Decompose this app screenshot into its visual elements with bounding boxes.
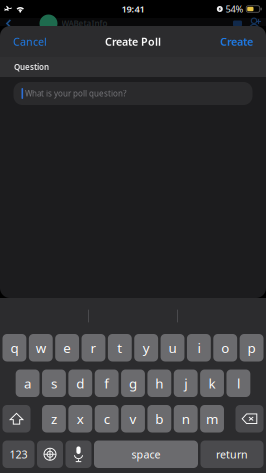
- staticText: 19:41: [121, 3, 144, 15]
- button[interactable]: c: [95, 405, 119, 432]
- staticText: Create: [220, 34, 253, 49]
- staticText: 54%: [225, 3, 243, 15]
- staticText: Create Poll: [105, 34, 161, 49]
- staticText: s: [51, 374, 57, 392]
- staticText: space: [131, 447, 160, 461]
- staticText: z: [51, 410, 57, 428]
- button[interactable]: k: [200, 369, 224, 397]
- staticText: b: [155, 410, 163, 428]
- button[interactable]: Delete: [235, 405, 263, 432]
- staticText: Cancel: [13, 34, 47, 49]
- staticText: l: [237, 374, 240, 392]
- button[interactable]: space: [94, 440, 198, 468]
- button[interactable]: Next keyboard: [37, 440, 63, 468]
- staticText: p: [248, 339, 256, 357]
- button[interactable]: x: [68, 405, 92, 432]
- staticText: n: [182, 410, 190, 428]
- button[interactable]: j: [174, 369, 198, 397]
- button[interactable]: t: [108, 334, 132, 361]
- button[interactable]: Shift: [2, 405, 30, 432]
- staticText: h: [155, 374, 163, 392]
- button[interactable]: w: [29, 334, 53, 361]
- button[interactable]: y: [134, 334, 158, 361]
- button[interactable]: a: [16, 369, 40, 397]
- staticText: u: [168, 339, 176, 357]
- button[interactable]: m: [200, 405, 224, 432]
- button[interactable]: f: [95, 369, 119, 397]
- staticText: q: [10, 339, 18, 357]
- button[interactable]: 123: [2, 440, 34, 468]
- button[interactable]: s: [42, 369, 66, 397]
- button[interactable]: v: [121, 405, 145, 432]
- button[interactable]: return: [200, 440, 263, 468]
- staticText: k: [209, 374, 216, 392]
- button[interactable]: p: [240, 334, 263, 361]
- staticText: Question: [14, 62, 49, 72]
- button[interactable]: Cancel: [0, 27, 60, 56]
- button[interactable]: Dictate: [65, 440, 91, 468]
- staticText: d: [76, 374, 84, 392]
- button[interactable]: q: [2, 334, 26, 361]
- button[interactable]: h: [147, 369, 171, 397]
- staticText: return: [216, 447, 248, 461]
- button[interactable]: r: [82, 334, 105, 361]
- staticText: e: [63, 339, 71, 357]
- button[interactable]: Create: [207, 27, 266, 56]
- button[interactable]: u: [161, 334, 184, 361]
- button[interactable]: e: [55, 334, 79, 361]
- button[interactable]: l: [226, 369, 250, 397]
- staticText: c: [104, 410, 110, 428]
- staticText: r: [90, 339, 96, 357]
- staticText: WABetaInfo: [61, 18, 107, 29]
- staticText: x: [77, 410, 84, 428]
- staticText: m: [206, 410, 218, 428]
- staticText: t: [117, 339, 122, 357]
- staticText: v: [129, 410, 136, 428]
- button[interactable]: d: [68, 369, 92, 397]
- staticText: j: [184, 374, 187, 392]
- button[interactable]: z: [42, 405, 66, 432]
- button[interactable]: i: [187, 334, 211, 361]
- staticText: g: [129, 374, 137, 392]
- button[interactable]: n: [174, 405, 198, 432]
- button[interactable]: b: [147, 405, 171, 432]
- staticText: w: [36, 339, 46, 357]
- staticText: f: [104, 374, 109, 392]
- staticText: a: [24, 374, 31, 392]
- button[interactable]: o: [213, 334, 237, 361]
- staticText: i: [197, 339, 200, 357]
- staticText: 123: [9, 447, 27, 461]
- staticText: What is your poll question?: [25, 88, 126, 99]
- button[interactable]: g: [121, 369, 145, 397]
- staticText: y: [143, 339, 150, 357]
- staticText: o: [221, 339, 229, 357]
